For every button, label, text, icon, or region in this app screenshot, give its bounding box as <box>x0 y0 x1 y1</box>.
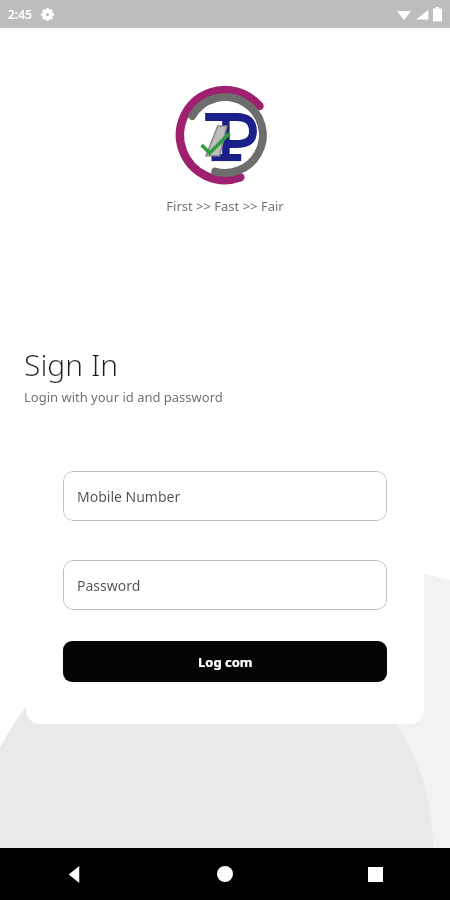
staticText: Sign In <box>24 344 119 385</box>
button[interactable]: Password <box>63 560 387 610</box>
staticText: Login with your id and password <box>24 388 223 406</box>
staticText: 2:45 <box>8 6 32 22</box>
staticText: Password <box>77 576 141 595</box>
button[interactable]: Back <box>0 848 150 900</box>
staticText: First >> Fast >> Fair <box>166 197 284 215</box>
staticText: Log com <box>198 653 253 671</box>
button[interactable]: Log com <box>63 641 387 682</box>
button[interactable]: Mobile Number <box>63 471 387 521</box>
button[interactable]: Recent apps <box>300 848 450 900</box>
staticText: Mobile Number <box>77 487 181 506</box>
button[interactable]: Home <box>150 848 300 900</box>
